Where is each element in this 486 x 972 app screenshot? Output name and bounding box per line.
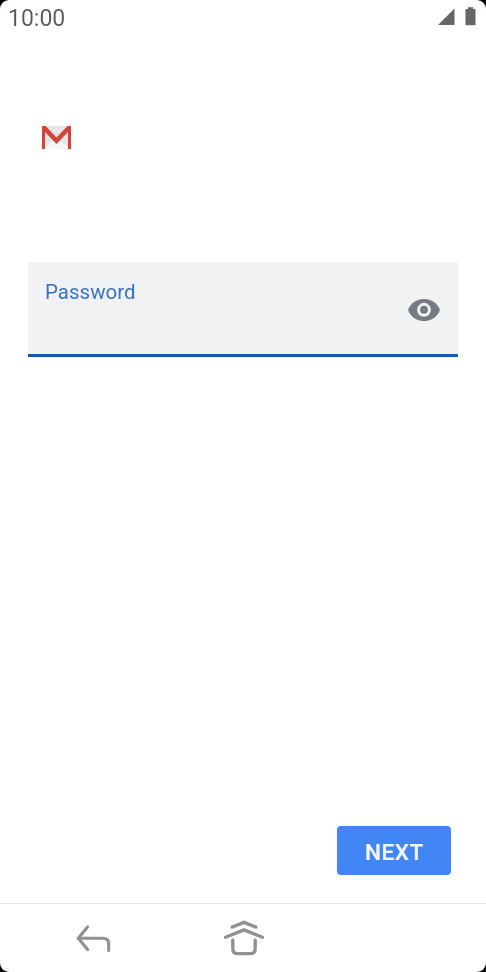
- staticText: 10:00: [8, 5, 66, 32]
- button[interactable]: Back: [69, 914, 117, 962]
- staticText: Password: [45, 280, 136, 304]
- button[interactable]: Home: [218, 912, 270, 964]
- staticText: NEXT: [365, 839, 424, 865]
- button[interactable]: NEXT: [337, 826, 451, 875]
- button[interactable]: Password: [28, 262, 458, 357]
- button[interactable]: Show password: [400, 286, 448, 334]
